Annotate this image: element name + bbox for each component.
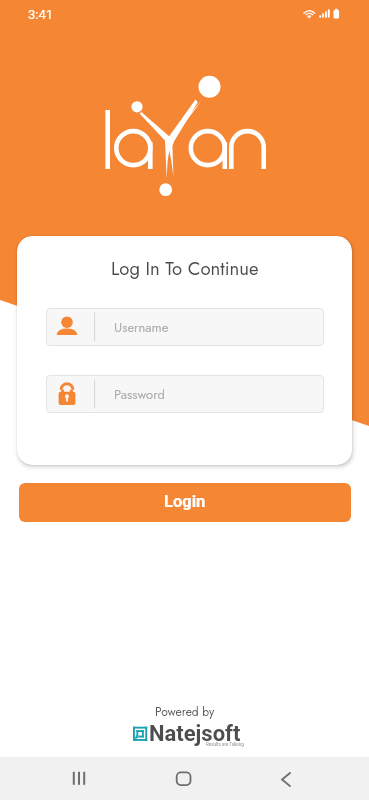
button[interactable]: Home <box>160 757 207 800</box>
staticText: Powered by <box>155 703 215 720</box>
staticText: Results are Talking <box>206 742 244 747</box>
button[interactable]: Recent apps <box>56 757 103 800</box>
button[interactable]: Password <box>46 375 324 413</box>
staticText: Natejsoft <box>149 721 241 747</box>
button[interactable]: Login <box>19 483 351 522</box>
button[interactable]: Username <box>46 308 324 346</box>
staticText: Log In To Continue <box>111 255 259 282</box>
button[interactable]: Back <box>263 757 310 800</box>
staticText: 3:41 <box>28 7 54 22</box>
staticText: Login <box>164 492 206 511</box>
staticText: Username <box>114 318 169 337</box>
staticText: Password <box>114 385 166 404</box>
